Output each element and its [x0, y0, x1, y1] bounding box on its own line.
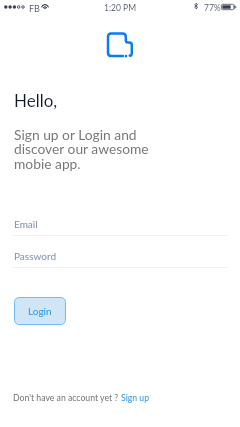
staticText: Password: [14, 250, 56, 262]
staticText: 1:20 PM: [0, 3, 240, 13]
button[interactable]: Sign up: [121, 392, 150, 402]
staticText: Login: [28, 305, 52, 317]
staticText: Hello,: [14, 90, 58, 110]
button[interactable]: Login: [14, 297, 66, 325]
staticText: Email: [14, 218, 38, 230]
staticText: Don't have an account yet ?: [13, 392, 121, 402]
staticText: 77%: [204, 3, 221, 13]
staticText: Sign up or Login and discover our awesom…: [14, 126, 149, 172]
staticText: FB: [29, 3, 40, 14]
